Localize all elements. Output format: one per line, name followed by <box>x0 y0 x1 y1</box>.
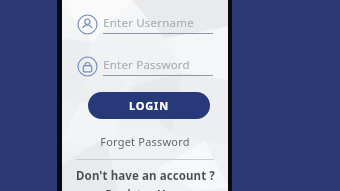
staticText: Forget Password <box>100 134 190 149</box>
staticText: Register Here <box>105 187 185 191</box>
staticText: Enter Password <box>103 57 190 73</box>
other: Username <box>77 14 98 35</box>
button[interactable]: Forget Password <box>62 134 228 149</box>
button[interactable]: LOGIN <box>88 92 210 119</box>
button[interactable]: Username <box>77 14 213 35</box>
other: Password <box>77 56 98 77</box>
staticText: Enter Username <box>103 15 194 31</box>
staticText: Don't have an account ? <box>76 168 215 184</box>
staticText: LOGIN <box>129 98 169 113</box>
button[interactable]: Register Here <box>62 187 228 191</box>
button[interactable]: Password <box>77 56 213 77</box>
